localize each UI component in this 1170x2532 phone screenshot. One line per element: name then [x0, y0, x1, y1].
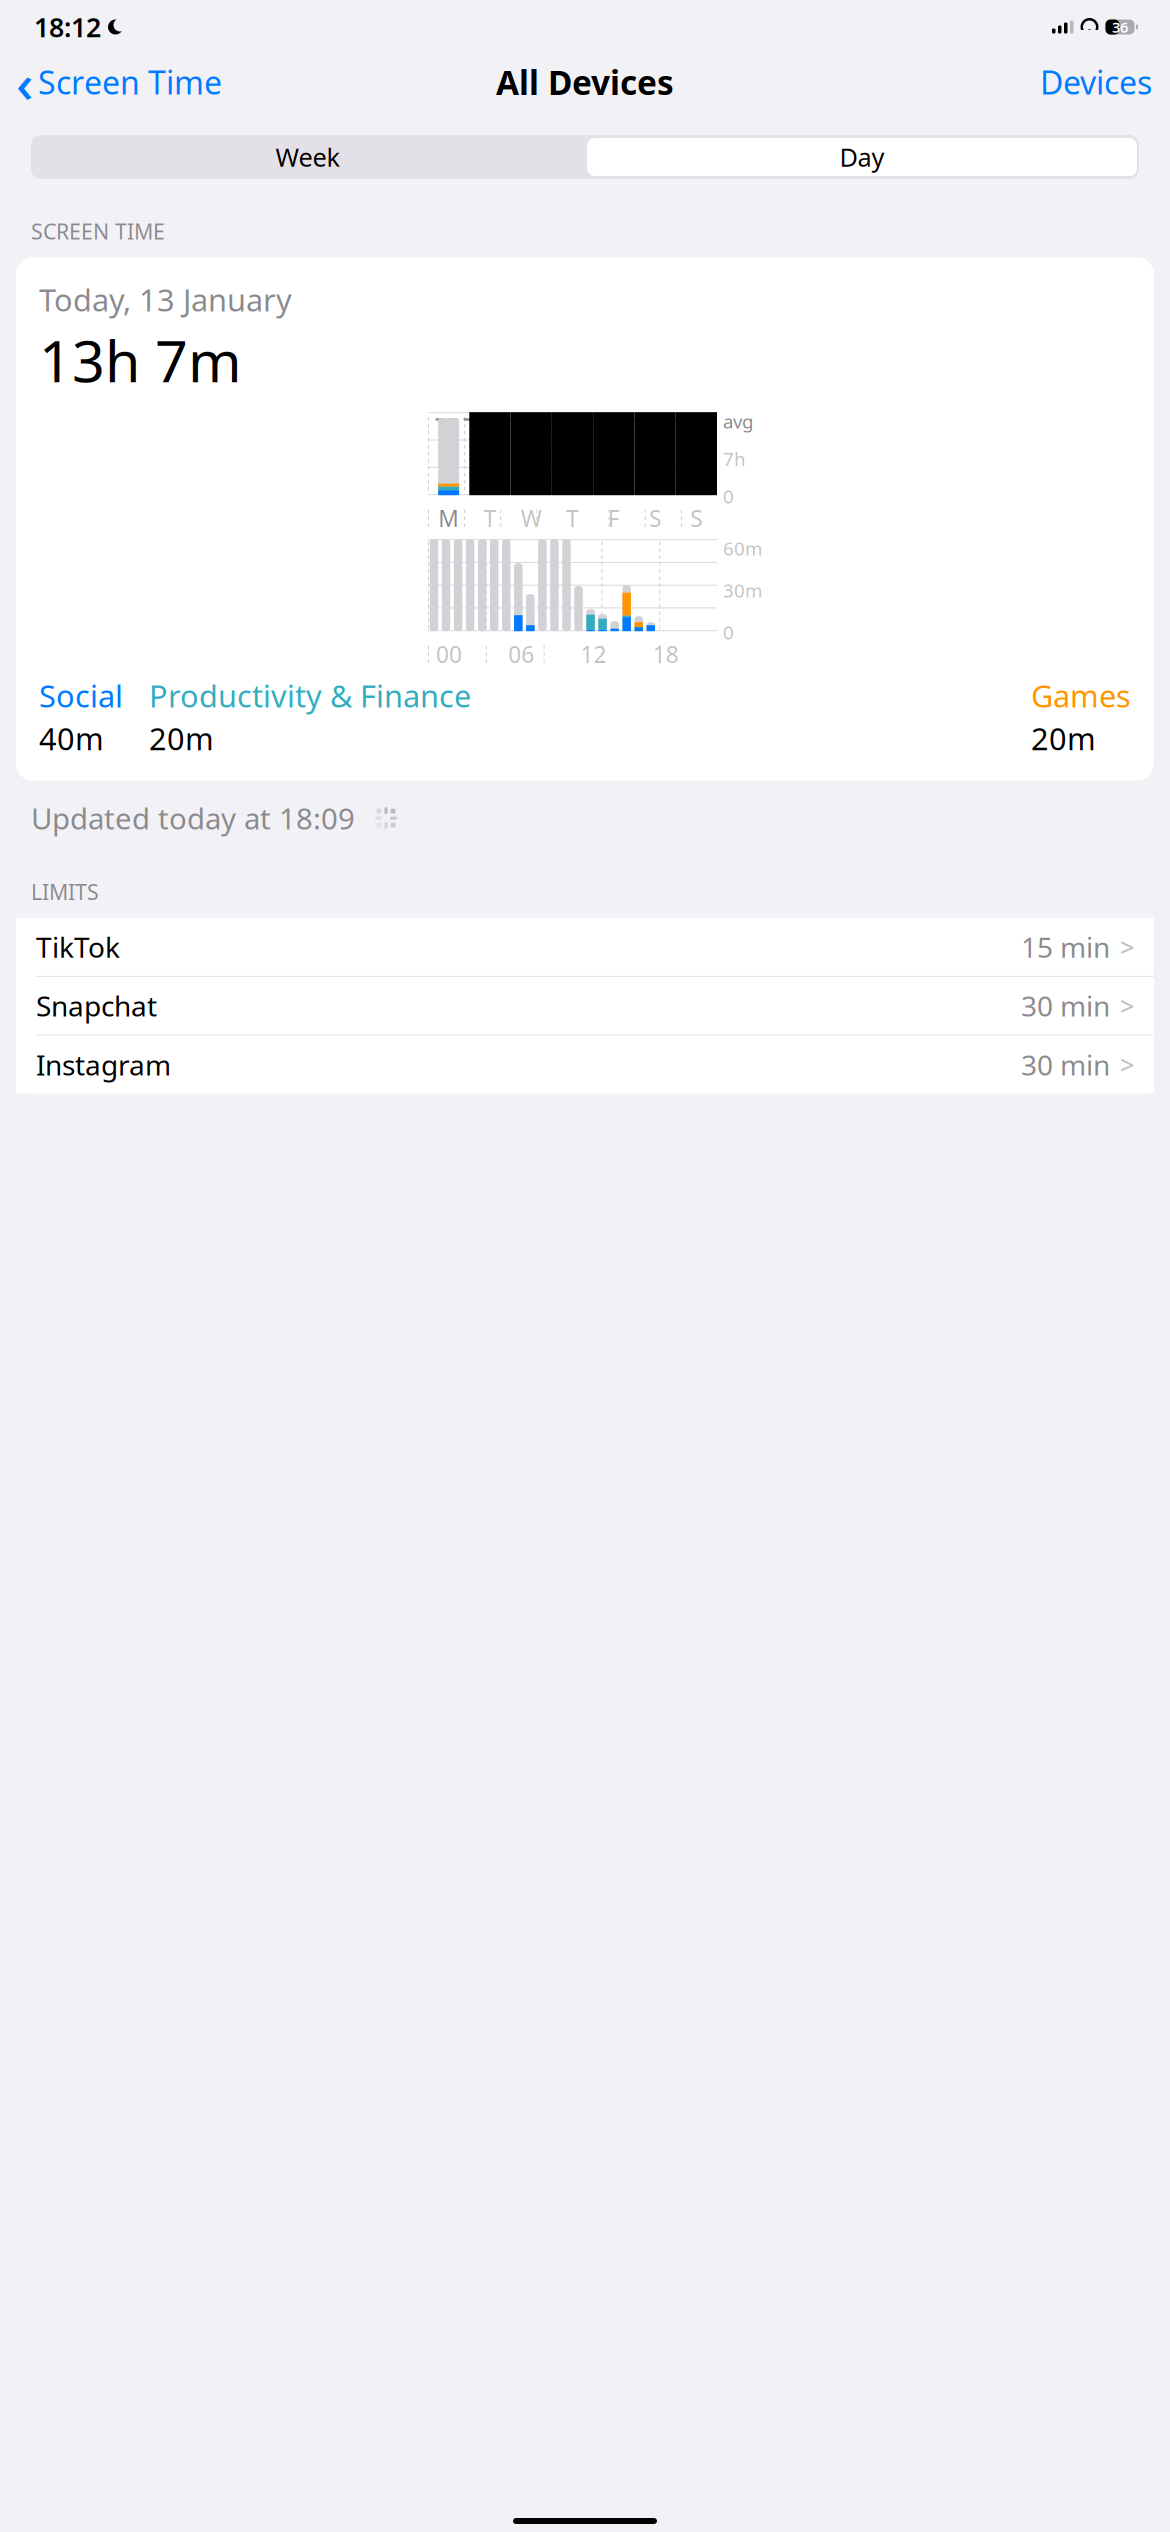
staticText: > — [1120, 989, 1134, 1022]
staticText: 12 — [580, 639, 606, 669]
staticText: 00 — [436, 639, 462, 669]
staticText: 60m — [723, 536, 762, 561]
staticText: ‹ — [16, 47, 33, 117]
staticText: Social — [39, 675, 123, 716]
button[interactable]: Week — [0, 135, 1170, 179]
staticText: LIMITS — [31, 878, 99, 906]
staticText: 30 min — [1021, 987, 1110, 1024]
staticText: 30m — [723, 578, 762, 603]
staticText: 06 — [508, 639, 534, 669]
staticText: F — [608, 503, 620, 533]
staticText: Instagram — [36, 1046, 171, 1083]
staticText: 30 min — [1021, 1046, 1110, 1083]
staticText: 13h 7m — [39, 322, 242, 398]
staticText: > — [1120, 930, 1134, 964]
staticText: Screen Time — [38, 61, 222, 103]
button[interactable]: Instagram — [16, 1035, 1154, 1093]
button[interactable]: TikTok — [16, 918, 1154, 976]
button[interactable]: Snapchat — [16, 977, 1154, 1035]
staticText: T — [483, 503, 496, 533]
staticText: Week — [275, 140, 340, 174]
staticText: S — [649, 503, 661, 533]
staticText: Snapchat — [36, 987, 157, 1024]
staticText: 20m — [149, 718, 214, 759]
staticText: Day — [839, 140, 884, 174]
staticText: > — [1120, 1048, 1134, 1081]
staticText: avg — [723, 409, 753, 434]
staticText: 0 — [723, 620, 734, 645]
staticText: 36 — [1112, 17, 1128, 37]
staticText: M — [438, 503, 459, 533]
staticText: Updated today at 18:09 — [31, 799, 355, 838]
staticText: 0 — [723, 484, 734, 509]
staticText: 40m — [39, 718, 104, 759]
staticText: Devices — [1040, 61, 1152, 103]
staticText: W — [521, 503, 542, 533]
staticText: S — [690, 503, 702, 533]
staticText: Today, 13 January — [39, 279, 292, 320]
staticText: Productivity & Finance — [149, 675, 471, 716]
staticText: 20m — [1031, 718, 1096, 759]
button[interactable]: ‹ — [0, 41, 222, 123]
staticText: T — [566, 503, 579, 533]
staticText: 7h — [723, 446, 746, 471]
staticText: 18 — [653, 639, 679, 669]
button[interactable]: Devices — [1040, 55, 1170, 109]
staticText: Games — [1031, 675, 1131, 716]
staticText: 18:12 — [34, 9, 101, 45]
staticText: 15 min — [1021, 928, 1110, 965]
staticText: TikTok — [36, 928, 120, 965]
staticText: SCREEN TIME — [31, 217, 165, 245]
staticText: All Devices — [496, 60, 674, 104]
